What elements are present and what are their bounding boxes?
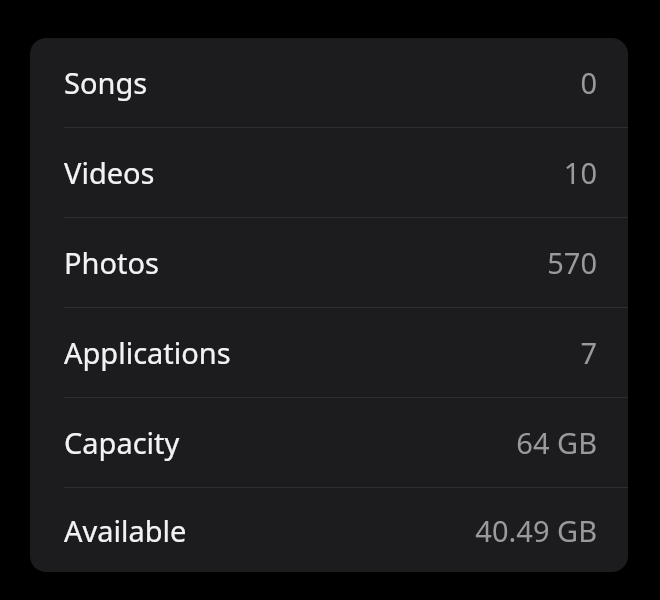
staticText: 40.49 GB — [475, 511, 597, 550]
button[interactable]: Videos — [30, 128, 628, 217]
button[interactable]: Applications — [30, 308, 628, 397]
staticText: 0 — [580, 63, 597, 102]
staticText: 10 — [563, 153, 597, 192]
staticText: Available — [64, 511, 187, 550]
button[interactable]: Capacity — [30, 398, 628, 487]
staticText: Applications — [64, 333, 231, 372]
staticText: 7 — [580, 333, 597, 372]
staticText: Capacity — [64, 423, 180, 462]
button[interactable]: Available — [30, 488, 628, 572]
staticText: 570 — [547, 243, 597, 282]
button[interactable]: Songs — [30, 38, 628, 127]
button[interactable]: Photos — [30, 218, 628, 307]
staticText: Videos — [64, 153, 155, 192]
staticText: 64 GB — [516, 423, 597, 462]
staticText: Photos — [64, 243, 159, 282]
staticText: Songs — [64, 63, 148, 102]
